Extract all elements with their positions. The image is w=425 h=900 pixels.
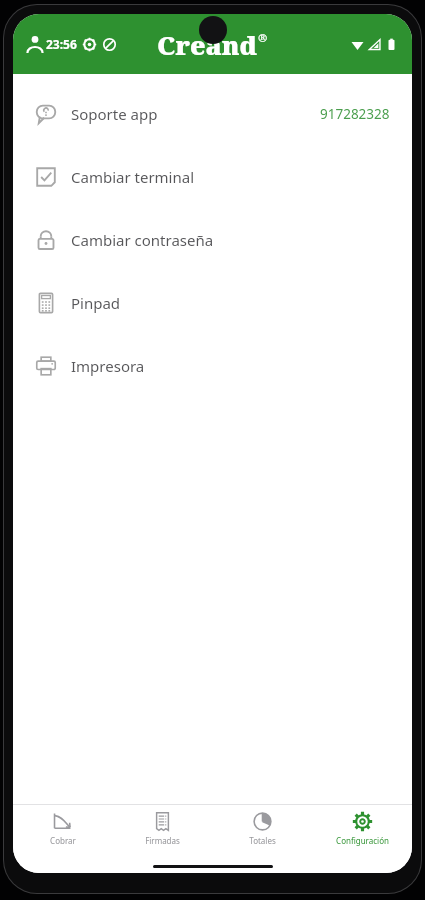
staticText: Cobrar <box>50 835 76 846</box>
staticText: Firmadas <box>145 835 180 846</box>
staticText: 23:56 <box>46 36 77 52</box>
button[interactable]: Cambiar terminal <box>13 145 412 208</box>
staticText: Impresora <box>71 356 145 376</box>
staticText: Pinpad <box>71 293 121 313</box>
button[interactable]: Impresora <box>13 334 412 397</box>
staticText: Creand <box>157 27 258 62</box>
staticText: Cambiar contraseña <box>71 230 214 250</box>
staticText: 917282328 <box>320 105 390 123</box>
button[interactable]: Totales <box>212 805 312 859</box>
button[interactable]: Pinpad <box>13 271 412 334</box>
staticText: Soporte app <box>71 104 158 124</box>
button[interactable]: Firmadas <box>112 805 212 859</box>
button[interactable]: Cobrar <box>13 805 112 859</box>
staticText: ® <box>258 30 268 45</box>
staticText: Cambiar terminal <box>71 167 195 187</box>
button[interactable]: Configuración <box>312 805 412 859</box>
staticText: Configuración <box>336 835 389 846</box>
button[interactable]: Cambiar contraseña <box>13 208 412 271</box>
button[interactable]: Soporte app <box>13 82 412 145</box>
staticText: Totales <box>249 835 276 846</box>
